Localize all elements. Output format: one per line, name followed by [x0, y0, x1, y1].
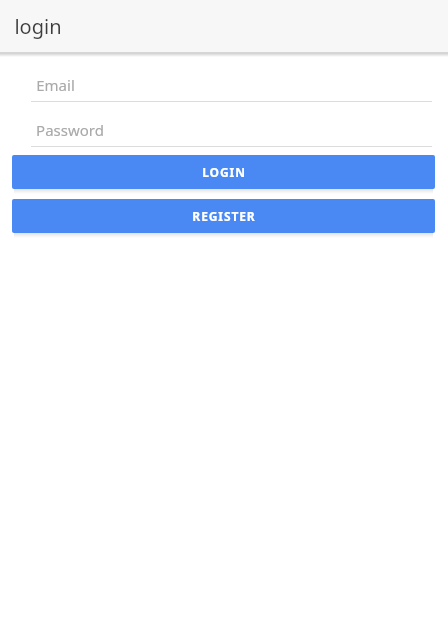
staticText: Email — [36, 75, 75, 95]
button[interactable]: REGISTER — [12, 199, 435, 233]
button[interactable]: Password input field — [31, 116, 432, 147]
staticText: LOGIN — [202, 164, 246, 180]
button[interactable]: Email input field — [31, 71, 432, 102]
staticText: REGISTER — [192, 208, 256, 224]
staticText: login — [14, 13, 62, 40]
staticText: Password — [36, 120, 104, 140]
button[interactable]: LOGIN — [12, 155, 435, 189]
